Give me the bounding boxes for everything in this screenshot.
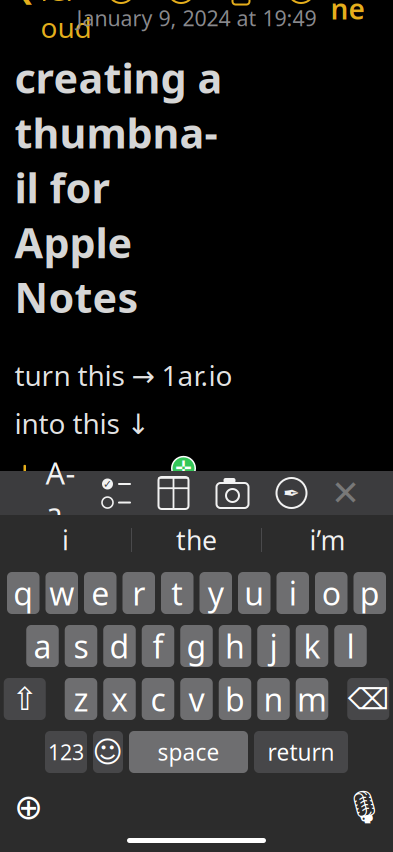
staticText: r <box>132 572 145 614</box>
button[interactable]: o <box>315 572 347 614</box>
button[interactable]: u <box>238 572 270 614</box>
staticText: ⌫ <box>348 682 389 716</box>
staticText: the <box>176 522 217 558</box>
staticText: turn this → 1ar.io <box>14 356 232 394</box>
button[interactable]: k <box>296 625 328 667</box>
button[interactable]: q <box>7 572 39 614</box>
button[interactable]: 123 <box>45 731 87 773</box>
staticText: a <box>33 625 51 667</box>
staticText: l <box>346 625 354 667</box>
staticText: ⇧ <box>11 681 38 717</box>
button[interactable]: f <box>142 625 174 667</box>
staticText: q <box>13 572 33 614</box>
staticText: i’m <box>309 522 345 558</box>
staticText: e <box>91 572 109 614</box>
button[interactable]: m <box>296 678 328 720</box>
staticText: creating a thumbnail for Apple Notes <box>14 50 222 324</box>
staticText: ✒ <box>283 482 300 504</box>
staticText: g <box>186 625 206 667</box>
button[interactable]: a <box>26 625 59 667</box>
staticText: p <box>360 572 380 614</box>
button[interactable]: j <box>257 625 290 667</box>
staticText: ☺ <box>92 735 123 769</box>
button[interactable]: Camera <box>206 472 258 514</box>
staticText: All iCloud <box>40 0 91 46</box>
button[interactable]: Markup <box>266 472 316 514</box>
button[interactable]: l <box>334 625 367 667</box>
button[interactable]: i’m <box>262 516 393 564</box>
staticText: b <box>225 678 245 720</box>
staticText: u <box>244 572 264 614</box>
staticText: z <box>73 678 88 720</box>
staticText: 123 <box>48 738 84 766</box>
staticText: i <box>289 572 297 614</box>
button[interactable]: Share <box>220 0 262 8</box>
staticText: ✕ <box>331 473 360 513</box>
staticText: return <box>267 737 334 767</box>
button[interactable]: b <box>219 678 251 720</box>
staticText: ❮ <box>14 0 35 4</box>
button[interactable]: n <box>257 678 290 720</box>
button[interactable]: Shift <box>4 678 46 720</box>
staticText: m <box>297 678 327 720</box>
staticText: into this ↓ <box>14 405 149 442</box>
button[interactable]: i <box>276 572 309 614</box>
button[interactable]: e <box>84 572 116 614</box>
button[interactable]: More <box>280 0 322 9</box>
staticText: ↰ <box>112 0 129 1</box>
button[interactable]: Delete <box>347 678 389 720</box>
staticText: ↱ <box>172 0 189 1</box>
button[interactable]: w <box>45 572 78 614</box>
staticText: i <box>62 522 69 558</box>
button[interactable]: h <box>219 625 251 667</box>
button[interactable]: y <box>199 572 232 614</box>
staticText: o <box>322 572 341 614</box>
staticText: 1ar.io <box>109 487 163 513</box>
button[interactable]: Text formatting <box>36 473 84 513</box>
staticText: v <box>188 678 204 720</box>
button[interactable]: t <box>161 572 193 614</box>
button[interactable]: the <box>132 516 261 564</box>
staticText: x <box>111 678 128 720</box>
staticText: ✛ <box>175 457 192 480</box>
staticText: d <box>109 625 129 667</box>
button[interactable]: z <box>65 678 97 720</box>
staticText: h <box>225 625 245 667</box>
button[interactable]: Undo <box>100 0 142 9</box>
staticText: 🎙 <box>344 789 385 825</box>
button[interactable]: Dictate <box>345 788 383 826</box>
button[interactable]: ❮ <box>6 0 91 52</box>
button[interactable]: Checklist <box>92 473 140 513</box>
button[interactable]: return <box>254 731 348 773</box>
button[interactable]: space <box>129 731 248 773</box>
button[interactable]: Close keyboard <box>324 478 366 508</box>
staticText: k <box>303 625 320 667</box>
button[interactable]: v <box>180 678 213 720</box>
staticText: t <box>171 572 183 614</box>
staticText: w <box>49 572 74 614</box>
staticText: j <box>269 625 277 667</box>
button[interactable]: Next keyboard <box>9 788 47 826</box>
button[interactable]: d <box>103 625 136 667</box>
staticText: Aa <box>45 452 75 534</box>
staticText: y <box>208 572 224 614</box>
button[interactable]: Done <box>330 0 386 33</box>
button[interactable]: Redo <box>160 0 202 9</box>
button[interactable]: i <box>0 516 131 564</box>
staticText: f <box>152 625 163 667</box>
staticText: 1ar.io <box>109 520 158 547</box>
staticText: Done <box>330 0 376 27</box>
button[interactable]: r <box>122 572 155 614</box>
button[interactable]: p <box>353 572 386 614</box>
staticText: n <box>263 678 283 720</box>
button[interactable]: Emoji <box>93 731 123 773</box>
button[interactable]: Table <box>148 472 198 514</box>
staticText: January 9, 2024 at 19:49 <box>76 4 316 32</box>
button[interactable]: s <box>65 625 97 667</box>
staticText: ⊕ <box>14 787 43 827</box>
button[interactable]: g <box>180 625 213 667</box>
staticText: c <box>150 678 165 720</box>
staticText: ✓ <box>103 478 112 490</box>
button[interactable]: x <box>103 678 136 720</box>
button[interactable]: c <box>142 678 174 720</box>
